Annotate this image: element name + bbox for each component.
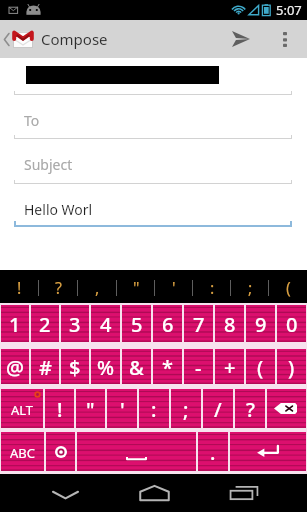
- staticText: (: [286, 277, 291, 299]
- staticText: ': [120, 396, 125, 423]
- button[interactable]: +: [215, 349, 244, 384]
- staticText: ?: [55, 277, 62, 299]
- staticText: /: [214, 396, 222, 423]
- button[interactable]: .: [198, 432, 228, 471]
- staticText: 2: [39, 311, 51, 338]
- staticText: 6: [162, 311, 174, 338]
- staticText: @: [6, 354, 24, 381]
- button[interactable]: ": [76, 389, 105, 428]
- button[interactable]: @: [1, 349, 29, 384]
- button[interactable]: -: [184, 349, 213, 384]
- button[interactable]: ": [117, 270, 155, 303]
- button[interactable]: :: [139, 389, 169, 428]
- staticText: 5: [131, 311, 143, 338]
- button[interactable]: $: [61, 349, 89, 384]
- staticText: 7: [193, 311, 205, 338]
- button[interactable]: Hello Worl: [0, 187, 307, 231]
- button[interactable]: 9: [246, 305, 275, 342]
- button[interactable]: ': [155, 270, 193, 303]
- staticText: ?: [246, 396, 255, 423]
- button[interactable]: %: [91, 349, 120, 384]
- button[interactable]: !: [45, 389, 74, 428]
- button[interactable]: (: [246, 349, 275, 384]
- button[interactable]: ;: [231, 270, 269, 303]
- staticText: ": [86, 396, 95, 423]
- button[interactable]: 4: [91, 305, 120, 342]
- staticText: 4: [100, 311, 112, 338]
- staticText: To: [24, 111, 40, 130]
- button[interactable]: :: [193, 270, 231, 303]
- button[interactable]: ': [107, 389, 137, 428]
- staticText: ": [133, 277, 140, 299]
- button[interactable]: ;: [171, 389, 201, 428]
- button[interactable]: 6: [153, 305, 182, 342]
- staticText: !: [57, 396, 63, 423]
- button[interactable]: ?: [235, 389, 265, 428]
- button[interactable]: &: [122, 349, 151, 384]
- staticText: ): [288, 354, 295, 381]
- button[interactable]: *: [153, 349, 182, 384]
- button[interactable]: Back: [46, 474, 84, 512]
- staticText: 8: [224, 311, 236, 338]
- staticText: Hello Worl: [24, 200, 93, 219]
- button[interactable]: 0: [277, 305, 306, 342]
- button[interactable]: More options: [272, 20, 298, 58]
- staticText: ,: [95, 277, 100, 299]
- staticText: Compose: [41, 29, 108, 49]
- staticText: ABC: [10, 444, 35, 462]
- staticText: :: [151, 396, 157, 423]
- staticText: 9: [255, 311, 267, 338]
- button[interactable]: Space: [77, 432, 196, 471]
- button[interactable]: 5: [122, 305, 151, 342]
- button[interactable]: ALT: [1, 389, 43, 428]
- staticText: ;: [248, 277, 253, 299]
- button[interactable]: !: [0, 270, 39, 303]
- staticText: .: [210, 439, 216, 466]
- staticText: &: [129, 354, 144, 381]
- button[interactable]: ): [277, 349, 306, 384]
- staticText: !: [17, 277, 22, 299]
- staticText: 1: [9, 311, 21, 338]
- button[interactable]: Subject: [0, 142, 307, 186]
- button[interactable]: 1: [1, 305, 29, 342]
- staticText: %: [97, 354, 115, 381]
- staticText: Subject: [24, 155, 73, 174]
- button[interactable]: Compose: [0, 20, 110, 58]
- button[interactable]: 3: [61, 305, 89, 342]
- button[interactable]: 2: [31, 305, 59, 342]
- button[interactable]: Enter: [230, 432, 306, 471]
- staticText: #: [39, 354, 52, 381]
- staticText: :: [210, 277, 215, 299]
- button[interactable]: 7: [184, 305, 213, 342]
- button[interactable]: ABC: [1, 432, 44, 471]
- button[interactable]: Recent apps: [225, 474, 263, 512]
- staticText: ALT: [11, 401, 34, 419]
- button[interactable]: Keyboard settings: [46, 432, 75, 471]
- button[interactable]: To: [0, 98, 307, 142]
- staticText: +: [224, 354, 236, 381]
- button[interactable]: ?: [39, 270, 78, 303]
- staticText: *: [162, 354, 173, 381]
- button[interactable]: ,: [78, 270, 117, 303]
- button[interactable]: (: [269, 270, 307, 303]
- staticText: $: [69, 354, 81, 381]
- staticText: ;: [183, 396, 189, 423]
- staticText: -: [195, 354, 202, 381]
- staticText: 3: [69, 311, 81, 338]
- button[interactable]: Home: [135, 474, 173, 512]
- staticText: ': [172, 277, 176, 299]
- button[interactable]: 8: [215, 305, 244, 342]
- staticText: (: [257, 354, 264, 381]
- staticText: 0: [286, 311, 298, 338]
- button[interactable]: /: [203, 389, 233, 428]
- button[interactable]: Backspace: [267, 389, 306, 428]
- button[interactable]: Send: [224, 20, 258, 58]
- staticText: 5:07: [276, 1, 302, 19]
- button[interactable]: #: [31, 349, 59, 384]
